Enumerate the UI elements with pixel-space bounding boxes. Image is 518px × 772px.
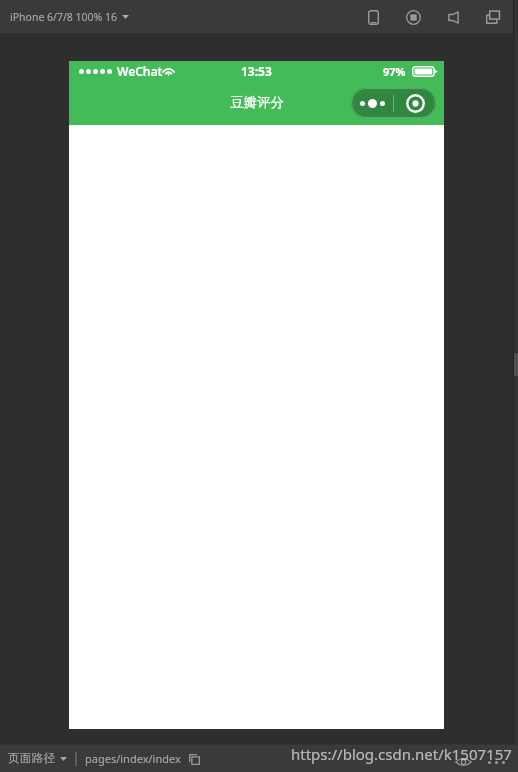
button[interactable]: 页面路径 <box>3 747 72 770</box>
staticText: 13:53 <box>241 63 272 79</box>
button[interactable]: Sound <box>439 3 467 31</box>
button[interactable]: Copy path <box>186 751 202 767</box>
staticText: iPhone 6/7/8 100% 16 <box>10 10 118 24</box>
staticText: WeChat <box>117 63 163 79</box>
button[interactable]: Detach window <box>479 3 507 31</box>
staticText: 豆瓣评分 <box>230 94 284 111</box>
button[interactable]: Close mini program <box>394 88 436 118</box>
staticText: 97% <box>383 64 406 79</box>
staticText: https://blog.csdn.net/k1507157 <box>291 744 512 764</box>
button[interactable]: Simulator device <box>359 3 387 31</box>
button[interactable]: More options <box>351 88 393 118</box>
staticText: pages/index/index <box>85 751 181 766</box>
button[interactable]: iPhone 6/7/8 100% 16 <box>4 5 135 29</box>
button[interactable]: Record <box>399 3 427 31</box>
staticText: 页面路径 <box>8 751 56 766</box>
